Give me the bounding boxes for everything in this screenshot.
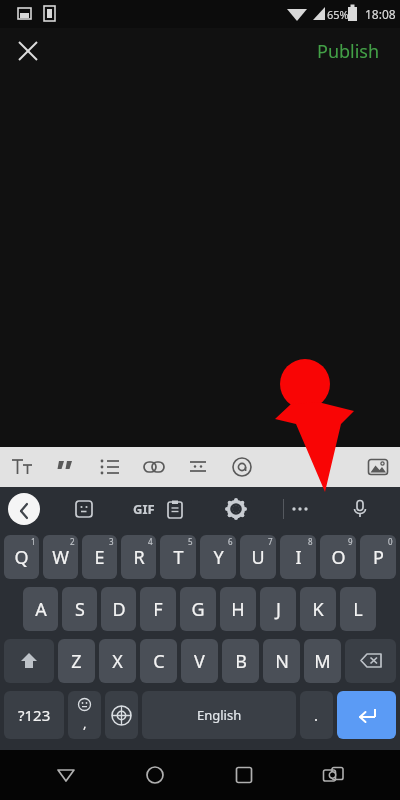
button[interactable]: Stickers <box>64 489 104 529</box>
button[interactable]: Rotate screen <box>311 753 355 797</box>
staticText: I <box>295 545 302 570</box>
staticText: . <box>314 705 319 725</box>
button[interactable]: Publish <box>309 33 388 70</box>
staticText: , <box>83 714 87 732</box>
button[interactable]: V <box>181 639 218 683</box>
staticText: 5 <box>188 536 193 547</box>
staticText: X <box>112 649 123 674</box>
staticText: P <box>373 545 384 570</box>
button[interactable]: Settings <box>216 489 256 529</box>
staticText: 2 <box>70 536 75 547</box>
button[interactable]: T <box>160 535 196 579</box>
staticText: A <box>35 597 47 622</box>
button[interactable]: L <box>340 587 376 631</box>
button[interactable]: P <box>360 535 396 579</box>
staticText: E <box>94 545 105 570</box>
staticText: 9 <box>348 536 353 547</box>
staticText: K <box>312 597 324 622</box>
staticText: H <box>231 597 245 622</box>
button[interactable]: H <box>220 587 256 631</box>
staticText: 3 <box>109 536 114 547</box>
button[interactable]: Home <box>133 753 177 797</box>
staticText: Q <box>14 545 29 570</box>
button[interactable]: Symbols <box>4 691 64 739</box>
button[interactable]: Close <box>8 31 48 71</box>
button[interactable]: U <box>240 535 276 579</box>
button[interactable]: Voice input <box>340 489 380 529</box>
staticText: N <box>275 649 289 674</box>
button[interactable]: N <box>263 639 300 683</box>
button[interactable]: Text format <box>0 447 44 487</box>
staticText: C <box>153 649 165 674</box>
button[interactable]: I <box>280 535 316 579</box>
button[interactable]: Period <box>300 691 333 739</box>
staticText: 1 <box>31 536 36 547</box>
staticText: V <box>194 649 205 674</box>
staticText: 8 <box>308 536 313 547</box>
staticText: 0 <box>388 536 393 547</box>
button[interactable]: Insert image <box>356 447 400 487</box>
staticText: S <box>75 597 85 622</box>
button[interactable]: Backspace <box>345 639 396 683</box>
button[interactable]: Shift <box>4 639 54 683</box>
button[interactable]: Link <box>132 447 176 487</box>
button[interactable]: Enter <box>337 691 396 739</box>
button[interactable]: Recents <box>222 753 266 797</box>
staticText: English <box>197 706 242 724</box>
button[interactable]: F <box>140 587 176 631</box>
button[interactable]: Z <box>58 639 95 683</box>
button[interactable]: E <box>82 535 117 579</box>
button[interactable]: S <box>62 587 97 631</box>
button[interactable]: Emoji and comma <box>68 691 101 739</box>
button[interactable]: Back <box>44 753 88 797</box>
staticText: 7 <box>268 536 273 547</box>
button[interactable]: Space <box>142 691 296 739</box>
button[interactable]: Y <box>200 535 236 579</box>
staticText: GIF <box>133 500 155 518</box>
staticText: Publish <box>317 39 380 64</box>
button[interactable]: C <box>140 639 177 683</box>
button[interactable]: GIF <box>124 489 164 529</box>
button[interactable]: O <box>320 535 356 579</box>
button[interactable]: Q <box>4 535 39 579</box>
button[interactable]: G <box>180 587 216 631</box>
button[interactable]: J <box>260 587 296 631</box>
staticText: F <box>153 597 163 622</box>
button[interactable]: Bullet list <box>88 447 132 487</box>
staticText: G <box>191 597 205 622</box>
button[interactable]: Divider <box>176 447 220 487</box>
staticText: T <box>173 545 184 570</box>
staticText: 4 <box>148 536 153 547</box>
staticText: L <box>353 597 363 622</box>
button[interactable]: Back <box>8 493 40 525</box>
staticText: 18:08 <box>365 6 396 22</box>
button[interactable]: X <box>99 639 136 683</box>
staticText: Y <box>213 545 224 570</box>
button[interactable]: More options <box>280 489 320 529</box>
button[interactable]: K <box>300 587 336 631</box>
button[interactable]: R <box>121 535 156 579</box>
staticText: B <box>235 649 247 674</box>
staticText: J <box>276 597 281 622</box>
staticText: 6 <box>228 536 233 547</box>
staticText: R <box>133 545 145 570</box>
staticText: M <box>314 649 331 674</box>
staticText: O <box>331 545 346 570</box>
staticText: W <box>52 545 69 570</box>
button[interactable]: A <box>23 587 58 631</box>
button[interactable]: Clipboard <box>155 489 195 529</box>
staticText: 65% <box>327 7 349 22</box>
button[interactable]: Mention <box>220 447 264 487</box>
staticText: D <box>112 597 126 622</box>
button[interactable]: W <box>43 535 78 579</box>
button[interactable]: Change language <box>105 691 138 739</box>
button[interactable]: B <box>222 639 259 683</box>
staticText: ?123 <box>18 705 51 725</box>
staticText: Z <box>71 649 82 674</box>
staticText: U <box>251 545 265 570</box>
button[interactable]: Quote <box>44 447 88 487</box>
button[interactable]: M <box>304 639 341 683</box>
button[interactable]: D <box>101 587 136 631</box>
